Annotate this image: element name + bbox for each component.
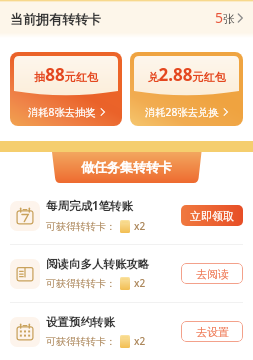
staticText: 5张 <box>215 8 235 27</box>
button[interactable]: 去阅读 <box>181 263 243 284</box>
staticText: 消耗28张去兑换 <box>145 105 219 119</box>
staticText: 可获得转转卡： <box>46 220 116 233</box>
button[interactable]: 做任务集转转卡 <box>0 152 253 183</box>
staticText: 立即领取 <box>190 209 234 223</box>
button[interactable]: 兑2.88元红包 <box>130 52 243 126</box>
staticText: 抽88元红包 <box>10 63 122 86</box>
staticText: 设置预约转账 <box>46 315 115 329</box>
button[interactable]: 抽88元红包 <box>10 52 122 126</box>
button[interactable]: 立即领取 <box>181 205 243 226</box>
staticText: 消耗8张去抽奖 <box>28 105 96 119</box>
staticText: 当前拥有转转卡 <box>10 11 101 27</box>
button[interactable]: 每周完成1笔转账 <box>0 187 253 244</box>
staticText: 去阅读 <box>196 267 229 281</box>
staticText: 每周完成1笔转账 <box>46 198 134 214</box>
button[interactable]: 我的转转卡 <box>215 3 243 32</box>
staticText: 兑2.88元红包 <box>130 63 243 86</box>
staticText: 阅读向多人转账攻略 <box>46 257 150 271</box>
staticText: 做任务集转转卡 <box>81 159 172 175</box>
staticText: 可获得转转卡： <box>46 277 116 290</box>
button[interactable]: 设置预约转账 <box>0 303 253 360</box>
staticText: 可获得转转卡： <box>46 335 116 348</box>
button[interactable]: 阅读向多人转账攻略 <box>0 245 253 302</box>
button[interactable]: 去设置 <box>181 321 243 342</box>
staticText: x2 <box>134 219 146 233</box>
staticText: x2 <box>134 276 146 290</box>
staticText: 去设置 <box>196 325 229 339</box>
staticText: x2 <box>134 334 146 348</box>
